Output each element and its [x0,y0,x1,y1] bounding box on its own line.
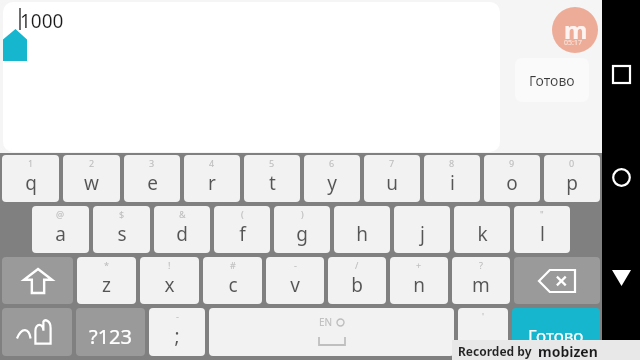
staticText: @ [56,208,65,220]
staticText: v [290,272,300,298]
staticText: a [55,221,66,247]
staticText: c [228,272,238,298]
button[interactable]: $ [93,206,150,253]
button[interactable] [2,308,72,356]
staticText: i [450,170,455,196]
staticText: r [208,170,216,196]
staticText: " [540,208,544,220]
staticText: Recorded by [458,343,532,359]
staticText: l [540,221,545,247]
staticText: 0 [569,157,575,169]
staticText: m [472,272,490,298]
button[interactable]: j [394,206,450,253]
button[interactable]: 1 [2,155,59,202]
staticText: t [269,170,276,196]
staticText: y [327,170,337,196]
button[interactable]: Recents [613,66,630,83]
staticText: - [294,259,297,271]
staticText: s [117,221,127,247]
staticText: x [164,272,175,298]
staticText: h [356,221,368,247]
button[interactable]: ? [452,257,510,304]
button[interactable]: 1000 [3,2,500,152]
button[interactable]: ( [214,206,270,253]
staticText: f [239,221,246,247]
staticText: g [296,221,308,247]
staticText: k [477,221,488,247]
staticText: / [355,259,359,271]
staticText: & [179,208,186,220]
button[interactable] [514,257,600,304]
staticText: e [147,170,158,196]
button[interactable]: 7 [364,155,420,202]
staticText: ? [479,259,483,271]
staticText: 2 [89,157,95,169]
button[interactable]: Back [612,270,631,286]
button[interactable]: 5 [244,155,300,202]
staticText: z [102,272,111,298]
staticText: 9 [509,157,515,169]
button[interactable]: ' [458,308,508,356]
staticText: mobizen [538,342,598,360]
staticText: j [420,221,425,247]
button[interactable]: 3 [124,155,180,202]
button[interactable]: @ [32,206,89,253]
button[interactable]: 6 [304,155,360,202]
button[interactable]: Готово [515,58,589,102]
staticText: p [566,170,578,196]
staticText: ! [168,259,171,271]
staticText: ?123 [89,323,132,350]
button[interactable]: - [266,257,324,304]
button[interactable]: # [203,257,262,304]
staticText: 3 [149,157,155,169]
staticText: $ [119,208,125,220]
staticText: b [351,272,363,298]
staticText: 05:17 [564,38,582,48]
button[interactable]: ?123 [76,308,145,356]
button[interactable] [2,257,73,304]
button[interactable]: 2 [63,155,120,202]
staticText: ( [241,208,244,220]
staticText: ' [482,310,485,322]
button[interactable]: 0 [544,155,600,202]
staticText: q [25,170,37,196]
staticText: u [386,170,398,196]
staticText: . [480,323,486,349]
staticText: Готово [528,324,584,347]
staticText: Готово [529,71,575,90]
button[interactable]: 8 [424,155,480,202]
staticText: # [230,259,236,271]
button[interactable]: ! [140,257,199,304]
button[interactable]: Space [209,308,454,356]
button[interactable]: ) [274,206,330,253]
button[interactable]: & [154,206,210,253]
staticText: ; [174,323,180,349]
staticText: w [84,170,99,196]
button[interactable]: Готово [512,308,600,356]
staticText: + [416,259,422,271]
staticText: n [413,272,425,298]
button[interactable]: " [514,206,570,253]
staticText: ) [301,208,304,220]
staticText: m [564,13,588,46]
staticText: 8 [449,157,455,169]
button[interactable]: 9 [484,155,540,202]
button[interactable]: k [454,206,510,253]
staticText: o [506,170,518,196]
button[interactable]: + [390,257,448,304]
staticText: 6 [329,157,335,169]
button[interactable]: 4 [184,155,240,202]
button[interactable]: h [334,206,390,253]
button[interactable]: / [328,257,386,304]
staticText: 7 [389,157,395,169]
staticText: EN [319,315,333,329]
button[interactable]: Home [612,168,631,187]
staticText: 1 [28,157,34,169]
staticText: * [104,259,109,271]
staticText: 1000 [20,8,64,34]
staticText: d [176,221,188,247]
staticText: - [176,310,179,322]
staticText: 5 [269,157,275,169]
button[interactable]: * [77,257,136,304]
button[interactable]: - [149,308,205,356]
